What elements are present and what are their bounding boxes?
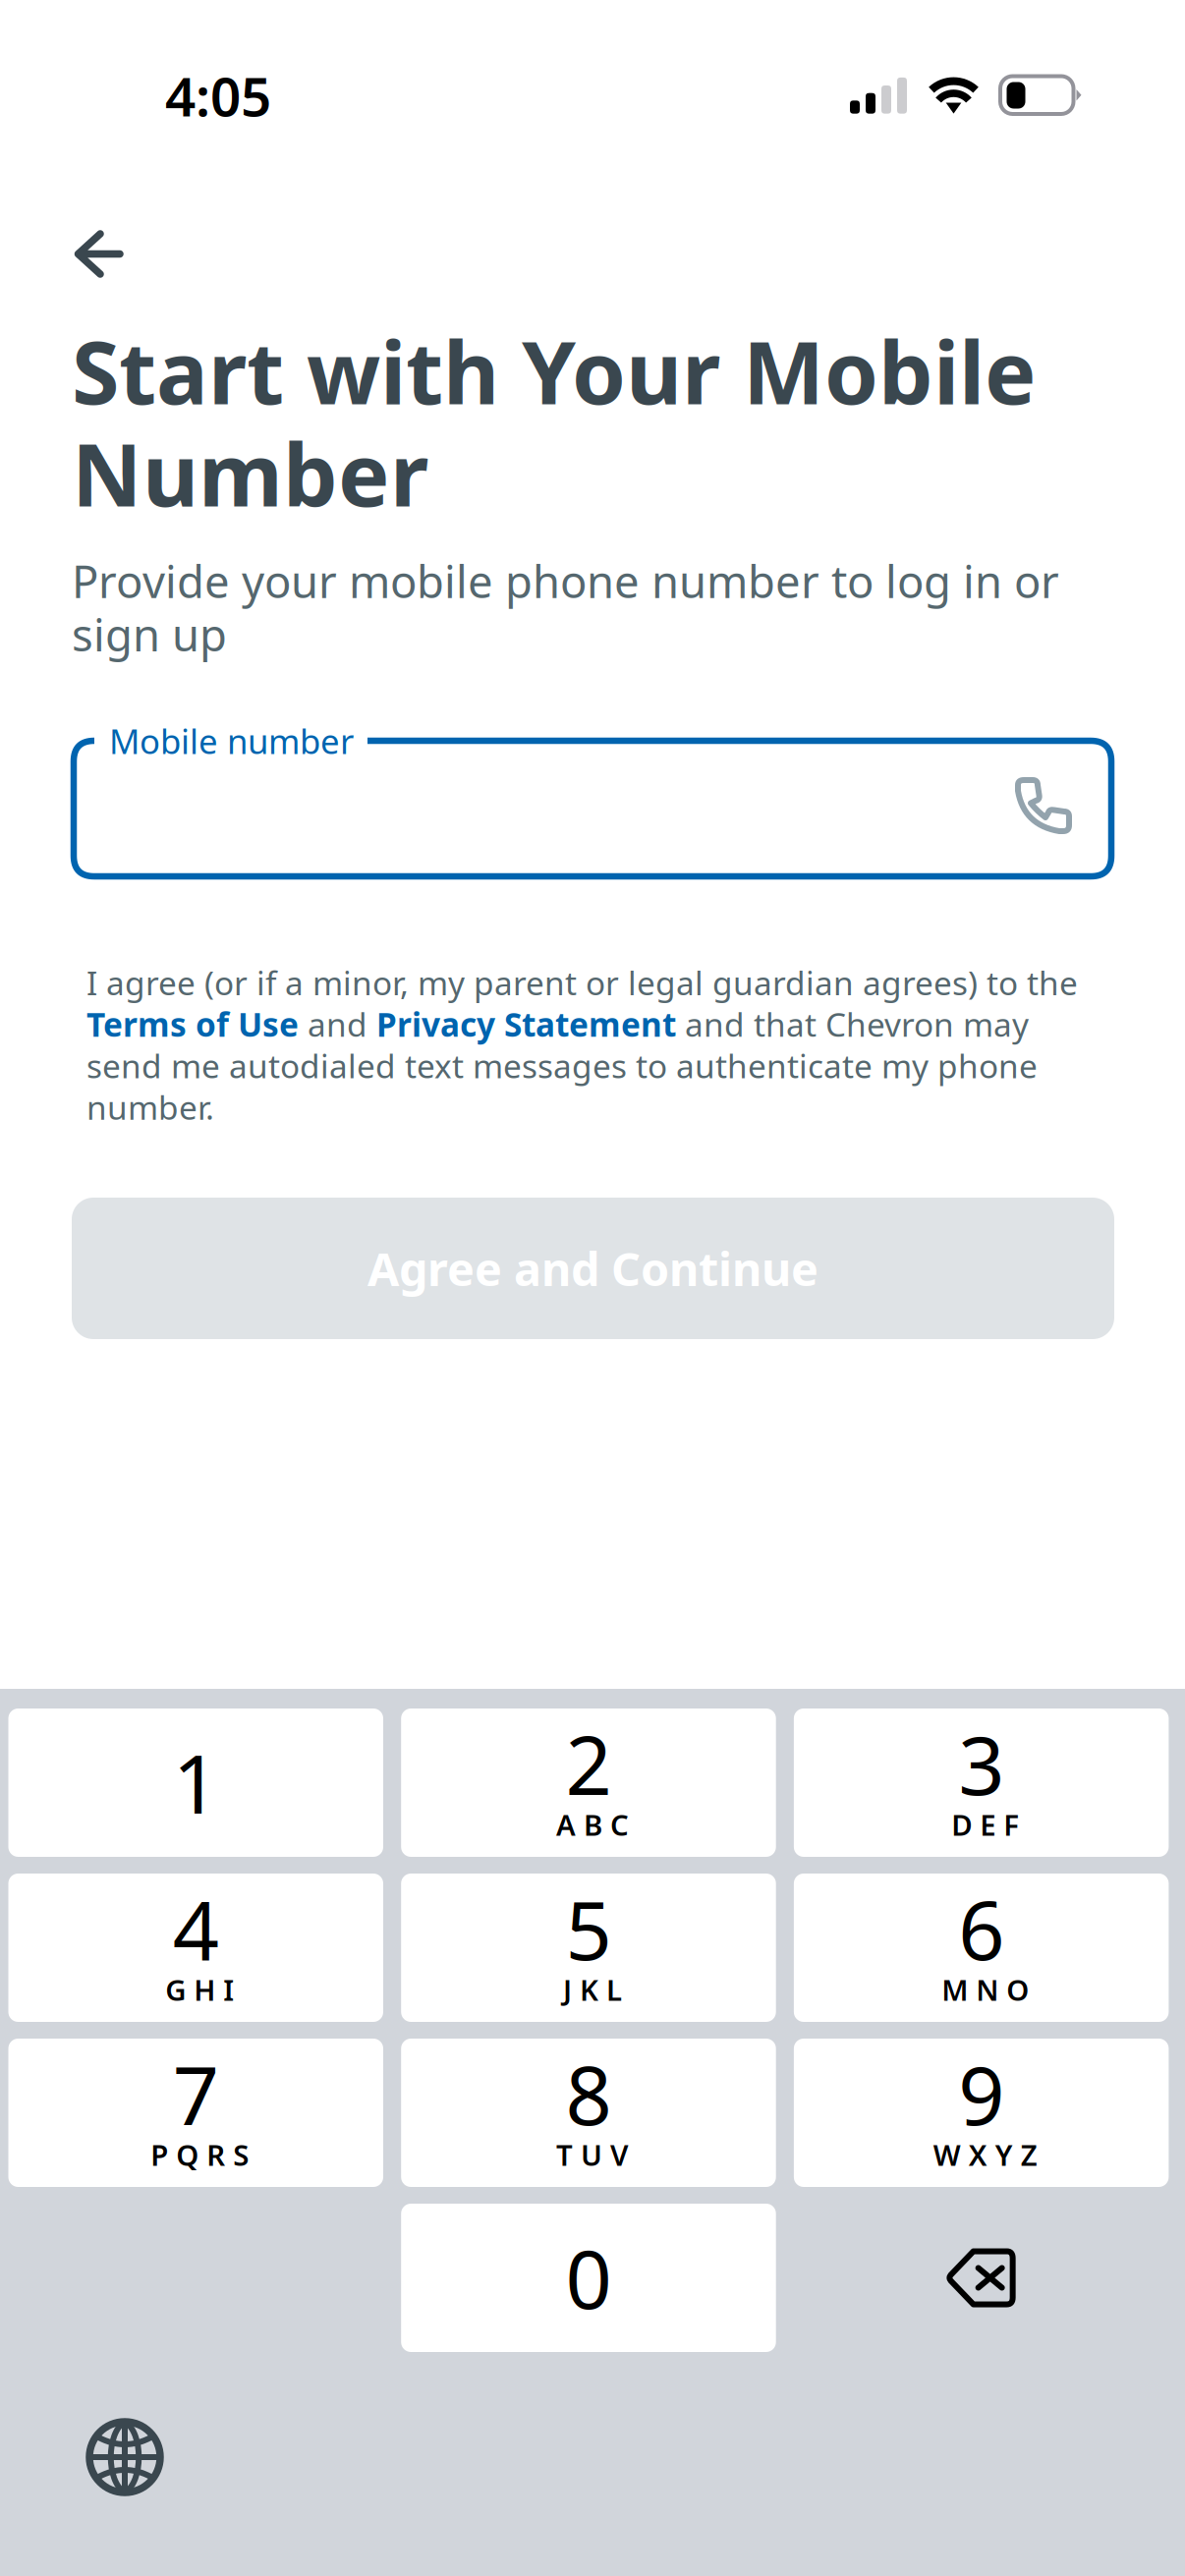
staticText: 4 bbox=[173, 1875, 219, 1982]
staticText: 4:05 bbox=[165, 60, 271, 131]
staticText: 6 bbox=[958, 1875, 1004, 1982]
staticText: I agree (or if a minor, my parent or leg… bbox=[86, 961, 1078, 1129]
button[interactable]: 1 bbox=[8, 1708, 383, 1857]
staticText: PQRS bbox=[151, 2135, 249, 2174]
button[interactable]: Back bbox=[73, 231, 124, 278]
button[interactable]: 0 bbox=[401, 2204, 776, 2352]
staticText: Provide your mobile phone number to log … bbox=[72, 551, 1059, 664]
staticText: GHI bbox=[165, 1970, 234, 2009]
button[interactable]: 7 bbox=[8, 2039, 383, 2187]
staticText: DEF bbox=[951, 1805, 1019, 1844]
staticText: 5 bbox=[565, 1875, 612, 1982]
button[interactable]: 6 bbox=[794, 1874, 1169, 2022]
staticText: Start with Your Mobile Number bbox=[72, 313, 1037, 530]
staticText: JKL bbox=[563, 1970, 622, 2009]
staticText: WXYZ bbox=[933, 2135, 1037, 2174]
staticText: 0 bbox=[565, 2223, 612, 2331]
staticText: TUV bbox=[556, 2135, 629, 2174]
staticText: ABC bbox=[556, 1805, 629, 1844]
staticText: Mobile number bbox=[109, 718, 354, 763]
button[interactable]: 9 bbox=[794, 2039, 1169, 2187]
button[interactable]: 4 bbox=[8, 1874, 383, 2022]
staticText: 8 bbox=[565, 2040, 612, 2148]
staticText: Agree and Continue bbox=[367, 1238, 818, 1299]
staticText: 1 bbox=[173, 1728, 219, 1836]
button[interactable]: 5 bbox=[401, 1874, 776, 2022]
button[interactable]: 8 bbox=[401, 2039, 776, 2187]
staticText: 9 bbox=[958, 2040, 1004, 2148]
button[interactable]: Agree and Continue bbox=[72, 1198, 1114, 1339]
staticText: 2 bbox=[565, 1710, 612, 1817]
button[interactable]: Change keyboard bbox=[56, 2388, 194, 2526]
button[interactable]: 3 bbox=[794, 1708, 1169, 1857]
button[interactable]: Delete bbox=[794, 2204, 1169, 2352]
staticText: 7 bbox=[173, 2040, 219, 2148]
staticText: 3 bbox=[958, 1710, 1004, 1817]
button[interactable]: 2 bbox=[401, 1708, 776, 1857]
staticText: MNO bbox=[941, 1970, 1029, 2009]
